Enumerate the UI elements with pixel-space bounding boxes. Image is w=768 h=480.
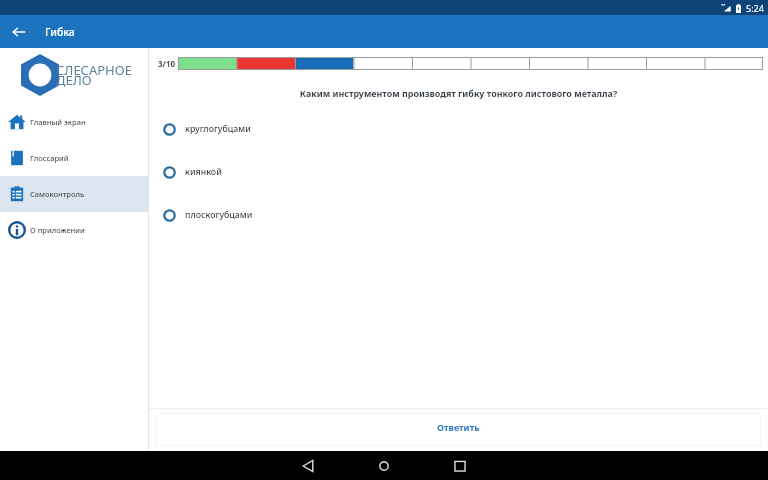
button[interactable]: Back	[7, 20, 31, 44]
staticText: Самоконтроль	[30, 189, 85, 199]
staticText: СЛЕСАРНОЕ	[56, 61, 132, 79]
staticText: Глоссарий	[30, 153, 69, 163]
button[interactable]: плоскогубцами	[149, 206, 768, 224]
button[interactable]: Back	[270, 451, 346, 480]
button[interactable]: Главный экран	[0, 104, 149, 140]
button[interactable]: Recents	[422, 451, 498, 480]
staticText: плоскогубцами	[185, 209, 253, 221]
button[interactable]: Самоконтроль	[0, 176, 149, 212]
button[interactable]: круглогубцами	[149, 120, 768, 138]
staticText: ДЕЛО	[56, 71, 92, 89]
button[interactable]: Home	[346, 451, 422, 480]
button[interactable]: О приложении	[0, 212, 149, 248]
staticText: О приложении	[30, 225, 85, 235]
staticText: 5:24	[746, 2, 764, 14]
button[interactable]: Ответить	[156, 413, 761, 446]
staticText: киянкой	[185, 166, 222, 178]
staticText: Главный экран	[30, 117, 86, 127]
staticText: Каким инструментом производят гибку тонк…	[149, 87, 768, 99]
staticText: Ответить	[437, 421, 480, 433]
staticText: круглогубцами	[185, 123, 251, 135]
button[interactable]: киянкой	[149, 163, 768, 181]
staticText: 3/10	[158, 58, 176, 69]
staticText: Гибка	[45, 25, 75, 39]
button[interactable]: Глоссарий	[0, 140, 149, 176]
